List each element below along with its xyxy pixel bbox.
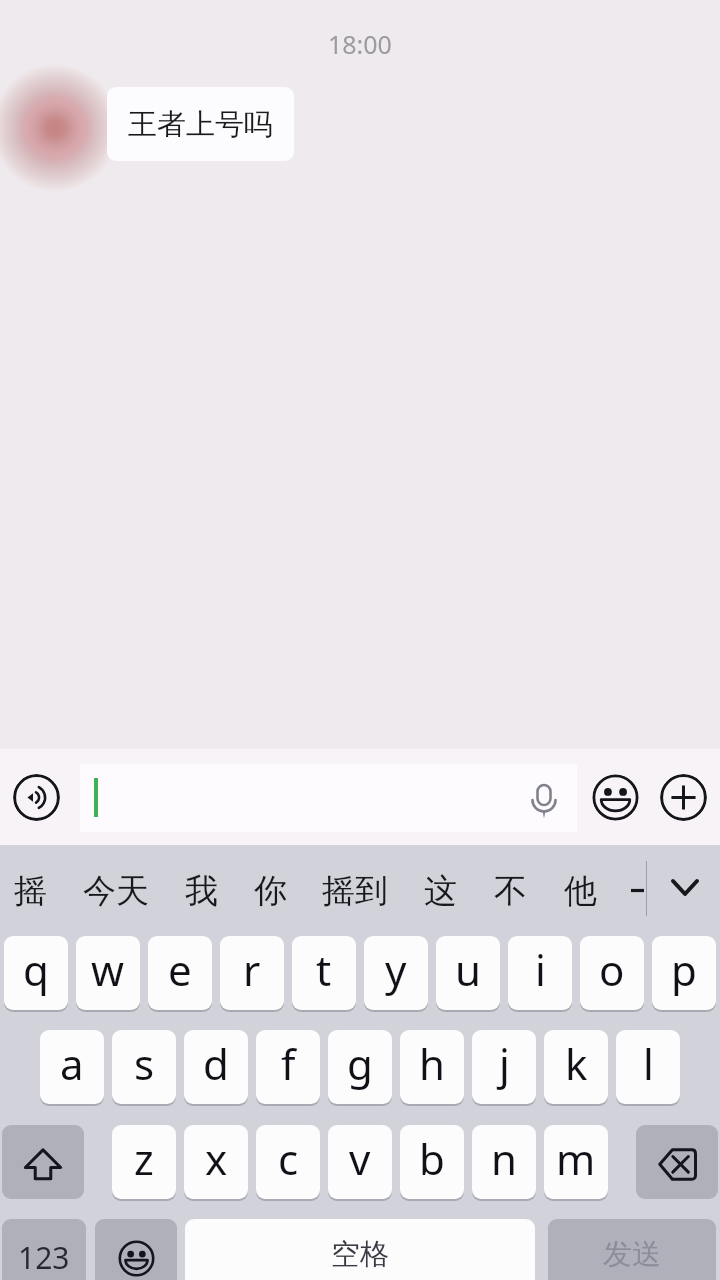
button[interactable]: d [184, 1030, 248, 1104]
staticText: 空格 [331, 1236, 389, 1273]
button[interactable]: 摇到 [315, 845, 395, 933]
button[interactable]: p [652, 936, 716, 1010]
button[interactable]: Voice input [13, 774, 60, 821]
button[interactable]: Hide keyboard [655, 845, 715, 933]
button[interactable]: v [328, 1125, 392, 1199]
staticText: a [60, 1035, 84, 1092]
staticText: h [419, 1035, 445, 1092]
button[interactable]: c [256, 1125, 320, 1199]
staticText: c [278, 1130, 299, 1187]
staticText: n [491, 1130, 517, 1187]
button[interactable]: g [328, 1030, 392, 1104]
button[interactable]: t [292, 936, 356, 1010]
button[interactable]: m [544, 1125, 608, 1199]
button[interactable]: f [256, 1030, 320, 1104]
staticText: 这 [424, 870, 457, 912]
button[interactable]: h [400, 1030, 464, 1104]
button[interactable]: Previous candidates [620, 845, 652, 933]
staticText: s [134, 1035, 155, 1092]
staticText: b [419, 1130, 445, 1187]
staticText: p [671, 941, 697, 998]
button[interactable]: 发送 [548, 1219, 716, 1280]
staticText: w [91, 941, 125, 998]
button[interactable]: z [112, 1125, 176, 1199]
staticText: 你 [254, 870, 287, 912]
button[interactable]: 他 [556, 845, 604, 933]
button[interactable]: k [544, 1030, 608, 1104]
button[interactable]: Speech to text [527, 777, 561, 819]
button[interactable]: Shift [2, 1125, 84, 1199]
staticText: 我 [185, 870, 218, 912]
button[interactable]: 王者上号吗 [107, 87, 294, 161]
staticText: k [565, 1035, 588, 1092]
button[interactable]: More options [660, 774, 707, 821]
button[interactable]: 空格 [185, 1219, 535, 1280]
button[interactable]: e [148, 936, 212, 1010]
button[interactable]: 这 [416, 845, 464, 933]
button[interactable]: 123 [2, 1219, 86, 1280]
button[interactable]: w [76, 936, 140, 1010]
button[interactable]: q [4, 936, 68, 1010]
staticText: d [203, 1035, 229, 1092]
staticText: i [535, 941, 546, 998]
button[interactable]: s [112, 1030, 176, 1104]
staticText: z [134, 1130, 154, 1187]
button[interactable]: l [616, 1030, 680, 1104]
button[interactable]: r [220, 936, 284, 1010]
button[interactable]: 我 [177, 845, 225, 933]
button[interactable]: 你 [246, 845, 294, 933]
staticText: 摇 [14, 870, 47, 912]
button[interactable]: a [40, 1030, 104, 1104]
staticText: f [281, 1035, 296, 1092]
staticText: e [168, 941, 192, 998]
staticText: u [455, 941, 481, 998]
staticText: x [205, 1130, 228, 1187]
staticText: 不 [494, 870, 527, 912]
staticText: r [243, 941, 261, 998]
button[interactable]: i [508, 936, 572, 1010]
staticText: 他 [564, 870, 597, 912]
button[interactable]: y [364, 936, 428, 1010]
button[interactable]: Message input [80, 764, 577, 832]
button[interactable]: u [436, 936, 500, 1010]
staticText: o [599, 941, 625, 998]
staticText: 123 [18, 1237, 70, 1278]
button[interactable]: Emoji [592, 774, 639, 821]
staticText: 今天 [83, 870, 149, 912]
button[interactable]: Backspace [636, 1125, 718, 1199]
button[interactable]: b [400, 1125, 464, 1199]
button[interactable]: Emoji keyboard [95, 1219, 177, 1280]
button[interactable]: 不 [486, 845, 534, 933]
staticText: y [385, 941, 407, 998]
button[interactable]: j [472, 1030, 536, 1104]
staticText: t [316, 941, 332, 998]
staticText: v [349, 1130, 371, 1187]
staticText: 摇到 [322, 870, 388, 912]
staticText: l [643, 1035, 654, 1092]
staticText: 王者上号吗 [128, 106, 273, 143]
staticText: 18:00 [328, 27, 392, 61]
button[interactable]: 摇 [6, 845, 54, 933]
button[interactable]: 今天 [76, 845, 156, 933]
button[interactable]: n [472, 1125, 536, 1199]
staticText: q [23, 941, 49, 998]
staticText: 发送 [603, 1236, 661, 1273]
staticText: g [347, 1035, 373, 1092]
staticText: j [499, 1035, 510, 1092]
button[interactable]: o [580, 936, 644, 1010]
staticText: m [556, 1130, 596, 1187]
button[interactable]: x [184, 1125, 248, 1199]
